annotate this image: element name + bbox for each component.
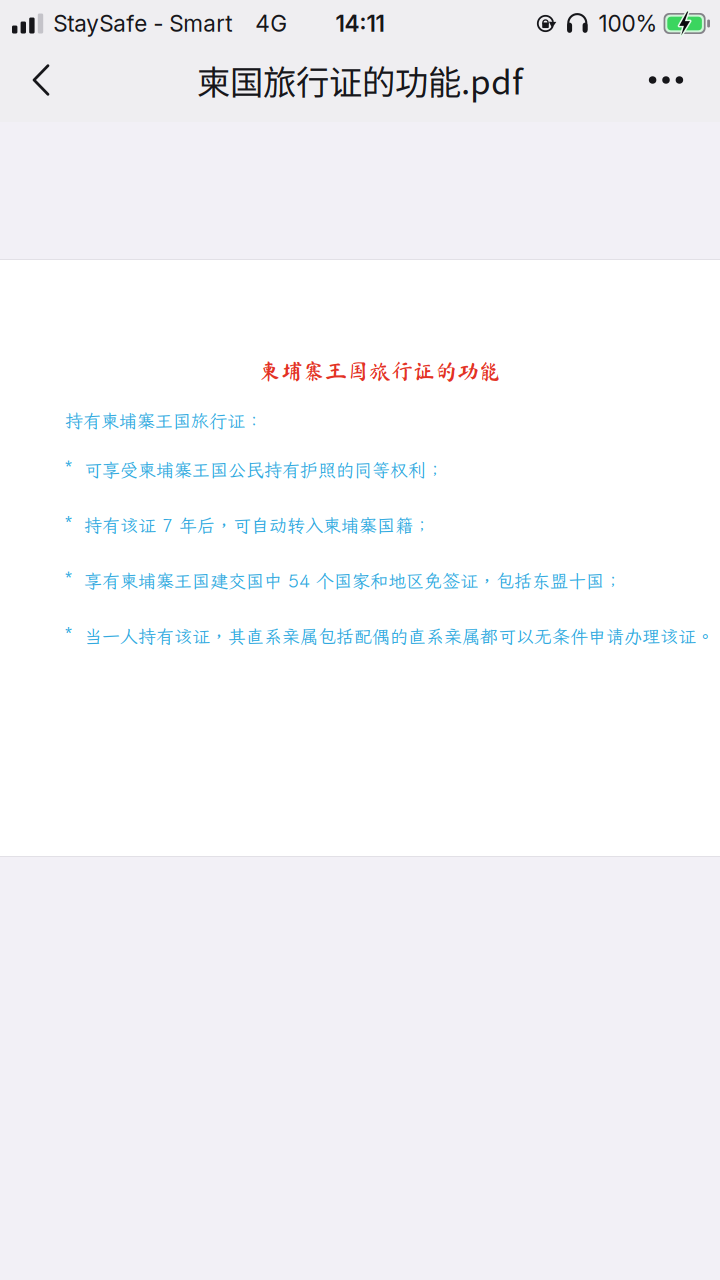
staticText: 4G — [255, 10, 287, 37]
staticText: 享有柬埔寨王国建交国中 54 个国家和地区免签证，包括东盟十国； — [84, 569, 622, 593]
staticText: * — [64, 510, 73, 534]
staticText: 100% — [599, 10, 658, 37]
staticText: * — [64, 566, 73, 590]
staticText: 可享受柬埔寨王国公民持有护照的同等权利； — [84, 458, 444, 482]
staticText: 持有该证 7 年后，可自动转入柬埔寨国籍； — [84, 513, 431, 537]
button[interactable]: Back — [0, 47, 82, 113]
staticText: 当一人持有该证，其直系亲属包括配偶的直系亲属都可以无条件申请办理该证。 — [84, 624, 714, 648]
staticText: 持有柬埔寨王国旅行证： — [65, 409, 263, 433]
button[interactable]: More — [612, 47, 720, 113]
staticText: 柬国旅行证的功能.pdf — [197, 56, 523, 104]
staticText: * — [64, 455, 73, 479]
staticText: 柬埔寨王国旅行证的功能 — [259, 360, 501, 382]
staticText: StaySafe - Smart — [53, 10, 232, 37]
staticText: 14:11 — [335, 10, 384, 37]
staticText: * — [64, 621, 73, 645]
